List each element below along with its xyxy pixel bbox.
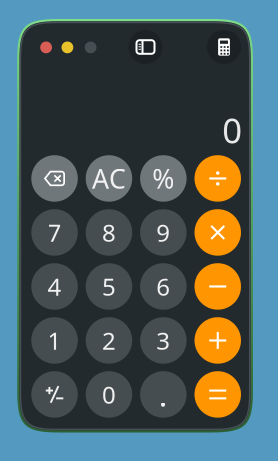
button[interactable]: Minimize [61, 41, 73, 53]
button[interactable]: Multiply [194, 209, 241, 256]
staticText: 1 [47, 324, 61, 356]
button[interactable]: Subtract [194, 263, 241, 310]
button[interactable]: Equals [194, 371, 241, 418]
button[interactable]: AC [86, 155, 132, 202]
button[interactable]: Calculator Mode [207, 30, 241, 64]
button[interactable]: Delete [31, 155, 78, 202]
button[interactable]: Zoom [85, 41, 96, 53]
button[interactable]: 0 [86, 371, 132, 418]
button[interactable]: 2 [86, 317, 132, 364]
staticText: 8 [102, 216, 116, 248]
button[interactable]: 3 [140, 317, 187, 364]
staticText: 5 [102, 270, 116, 302]
button[interactable]: 9 [140, 209, 187, 256]
button[interactable]: Plus Minus [31, 371, 78, 418]
staticText: 2 [102, 324, 116, 356]
button[interactable]: 6 [140, 263, 187, 310]
staticText: . [159, 373, 168, 416]
staticText: 9 [156, 216, 170, 248]
button[interactable]: Divide [194, 155, 241, 202]
staticText: 0 [222, 107, 242, 153]
staticText: 0 [102, 378, 116, 410]
button[interactable]: . [140, 371, 187, 418]
button[interactable]: 4 [31, 263, 78, 310]
button[interactable]: Toggle Sidebar [128, 30, 162, 64]
staticText: 6 [156, 270, 170, 302]
button[interactable]: Close [40, 41, 52, 53]
button[interactable]: 7 [31, 209, 78, 256]
staticText: % [152, 161, 174, 196]
staticText: 3 [156, 324, 170, 356]
button[interactable]: Add [194, 317, 241, 364]
button[interactable]: 5 [86, 263, 132, 310]
staticText: AC [92, 161, 126, 196]
staticText: 7 [47, 216, 61, 248]
button[interactable]: % [140, 155, 187, 202]
staticText: 4 [47, 270, 61, 302]
button[interactable]: 8 [86, 209, 132, 256]
button[interactable]: 1 [31, 317, 78, 364]
